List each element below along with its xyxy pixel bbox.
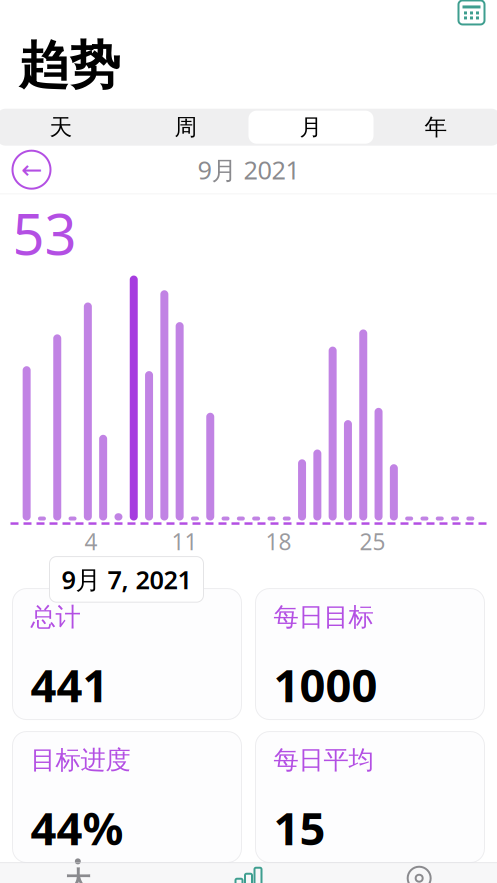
button[interactable]: 目标进度 — [12, 731, 241, 862]
button[interactable]: 设置 — [334, 864, 497, 883]
staticText: 15 — [273, 797, 325, 858]
button[interactable]: 每日目标 — [255, 588, 484, 719]
staticText: 周 — [174, 113, 197, 141]
button[interactable]: 年 — [373, 111, 497, 144]
staticText: 441 — [30, 654, 108, 715]
button[interactable]: 每日平均 — [255, 731, 484, 862]
button[interactable]: 总计 — [12, 588, 241, 719]
staticText: 大 — [65, 865, 90, 883]
staticText: 趋势 — [18, 34, 120, 97]
staticText: 每日目标 — [273, 601, 373, 632]
staticText: 天 — [49, 113, 72, 141]
staticText: 每日平均 — [273, 744, 373, 775]
button[interactable]: 天 — [0, 111, 123, 144]
staticText: 1000 — [273, 654, 377, 715]
button[interactable]: Calendar — [458, 0, 484, 24]
staticText: ← — [21, 155, 42, 184]
staticText: 53 — [12, 196, 76, 271]
staticText: 9月 7, 2021 — [61, 562, 191, 596]
button[interactable]: Previous month — [12, 151, 50, 189]
staticText: 25 — [359, 526, 385, 557]
staticText: 月 — [299, 113, 322, 141]
staticText: 总计 — [30, 601, 80, 632]
staticText: 11 — [171, 526, 197, 557]
button[interactable]: 周 — [123, 111, 248, 144]
button[interactable]: 大 — [0, 864, 163, 883]
button[interactable]: 趋势 — [163, 864, 334, 883]
staticText: 目标进度 — [30, 744, 130, 775]
staticText: 年 — [424, 113, 447, 141]
staticText: 9月 2021 — [197, 153, 299, 186]
button[interactable]: 月 — [248, 111, 373, 144]
staticText: 4 — [84, 526, 97, 557]
staticText: 44% — [30, 797, 123, 858]
staticText: 18 — [265, 526, 291, 557]
